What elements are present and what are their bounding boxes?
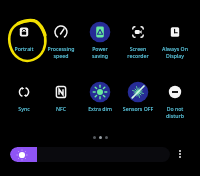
staticText: Sensors OFF xyxy=(119,105,157,112)
button[interactable]: Processing speed xyxy=(42,17,80,53)
button[interactable]: Sync xyxy=(5,77,43,113)
button[interactable]: Brightness xyxy=(10,147,170,162)
button[interactable]: Always On Display xyxy=(156,17,194,53)
button[interactable]: Sensors OFF xyxy=(119,77,157,113)
button[interactable]: Do not disturb xyxy=(156,77,194,113)
staticText: Extra dim xyxy=(81,105,119,112)
staticText: Power saving xyxy=(81,45,119,60)
staticText: NFC xyxy=(42,105,80,112)
button[interactable]: Portrait xyxy=(5,17,43,53)
staticText: Screen recorder xyxy=(119,45,157,60)
staticText: Processing speed xyxy=(42,45,80,60)
button[interactable]: More options xyxy=(174,146,186,161)
staticText: Always On Display xyxy=(156,45,194,60)
staticText: Portrait xyxy=(5,45,43,52)
button[interactable]: NFC xyxy=(42,77,80,113)
button[interactable]: Power saving xyxy=(81,17,119,53)
staticText: Do not disturb xyxy=(156,105,194,120)
staticText: Sync xyxy=(5,105,43,112)
button[interactable]: Screen recorder xyxy=(119,17,157,53)
button[interactable]: Extra dim xyxy=(81,77,119,113)
